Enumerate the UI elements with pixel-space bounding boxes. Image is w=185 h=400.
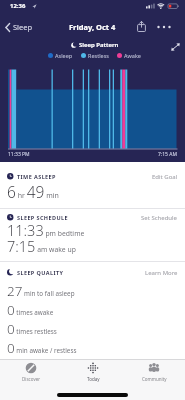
- button[interactable]: Today: [68, 362, 118, 386]
- staticText: 7:15 am wake up: [7, 236, 76, 256]
- staticText: 0 min awake / restless: [7, 339, 77, 357]
- button[interactable]: [167, 40, 183, 54]
- button[interactable]: Set Schedule: [141, 214, 178, 222]
- staticText: Set Schedule: [141, 214, 178, 222]
- button[interactable]: Edit Goal: [152, 173, 178, 181]
- staticText: SLEEP SCHEDULE: [17, 214, 68, 221]
- staticText: 7:15 AM: [158, 151, 177, 158]
- staticText: Learn More: [145, 269, 178, 277]
- staticText: SLEEP QUALITY: [17, 269, 64, 276]
- staticText: Restless: [88, 52, 109, 59]
- staticText: 11:33 PM: [8, 151, 30, 158]
- staticText: Awake: [124, 52, 141, 59]
- button[interactable]: Sleep: [5, 20, 33, 34]
- button[interactable]: Learn More: [145, 269, 178, 277]
- staticText: 27 min to fall asleep: [7, 282, 75, 300]
- staticText: 0 times awake: [7, 301, 54, 319]
- staticText: Community: [142, 376, 167, 382]
- staticText: Today: [87, 376, 100, 382]
- button[interactable]: Discover: [6, 362, 56, 386]
- staticText: Friday, Oct 4: [69, 22, 116, 32]
- staticText: Sleep Pattern: [79, 41, 119, 49]
- button[interactable]: [134, 19, 149, 34]
- button[interactable]: [153, 19, 175, 34]
- staticText: Sleep: [13, 22, 33, 32]
- staticText: 6 hr 49 min: [7, 181, 59, 202]
- staticText: 12:36: [10, 2, 26, 10]
- button[interactable]: Community: [129, 362, 179, 386]
- staticText: 0 times restless: [7, 320, 57, 338]
- staticText: Discover: [22, 376, 41, 382]
- staticText: Edit Goal: [152, 173, 178, 181]
- staticText: 11:33 pm bedtime: [7, 220, 85, 240]
- staticText: TIME ASLEEP: [17, 173, 56, 180]
- staticText: Asleep: [55, 52, 73, 59]
